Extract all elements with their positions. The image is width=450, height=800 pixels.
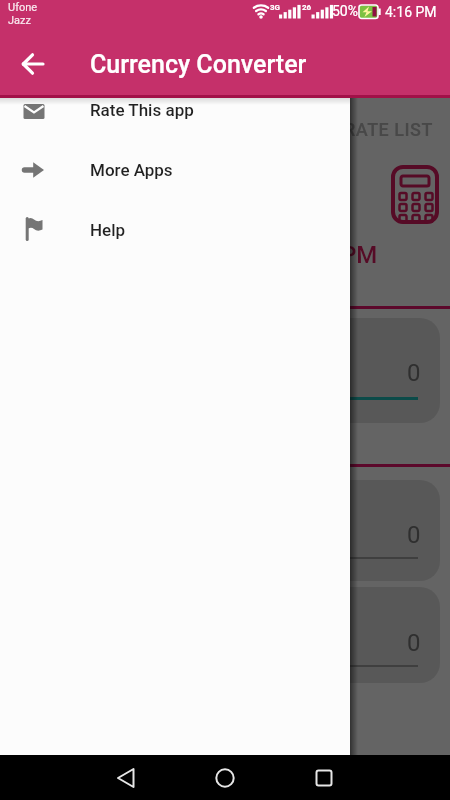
staticText: 0 <box>407 521 421 549</box>
staticText: 50% <box>332 3 358 19</box>
button[interactable] <box>201 755 249 800</box>
staticText: Help <box>90 220 126 240</box>
button[interactable]: Rate This app <box>0 86 350 134</box>
staticText: Jazz <box>8 14 31 27</box>
staticText: RATE LIST <box>344 119 433 140</box>
staticText: Ufone <box>8 1 38 14</box>
button[interactable]: More Apps <box>0 146 350 194</box>
button[interactable] <box>103 755 151 800</box>
staticText: Rate This app <box>90 100 194 120</box>
button[interactable] <box>10 40 58 88</box>
button[interactable]: Help <box>0 206 350 254</box>
staticText: 0 <box>407 359 421 387</box>
button[interactable] <box>300 755 348 800</box>
staticText: More Apps <box>90 160 173 180</box>
staticText: PM <box>341 241 378 269</box>
staticText: 0 <box>407 629 421 657</box>
staticText: Currency Converter <box>90 50 307 79</box>
staticText: 4:16 PM <box>385 4 437 20</box>
staticText: 26 <box>302 3 312 12</box>
staticText: 3G <box>270 3 281 12</box>
